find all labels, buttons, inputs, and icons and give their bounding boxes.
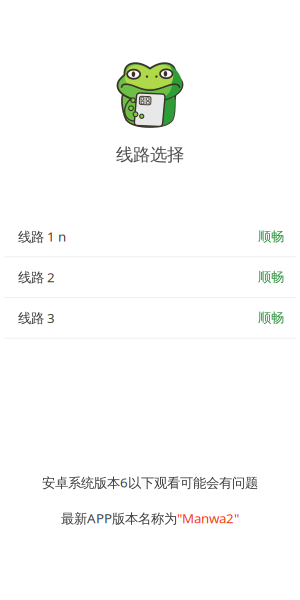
button[interactable]: 线路 2 xyxy=(0,257,300,298)
staticText: 线路 1 n xyxy=(18,228,66,245)
staticText: 顺畅 xyxy=(258,269,284,285)
staticText: "Manwa2" xyxy=(177,509,239,527)
button[interactable]: 线路 1 n xyxy=(0,217,300,257)
staticText: 线路 2 xyxy=(18,268,55,286)
staticText: 线路选择 xyxy=(116,144,184,165)
staticText: 安卓系统版本6以下观看可能会有问题 xyxy=(42,474,258,491)
staticText: 线路 3 xyxy=(18,309,55,327)
button[interactable]: 线路 3 xyxy=(0,298,300,339)
staticText: 顺畅 xyxy=(258,310,284,326)
staticText: 最新APP版本名称为 xyxy=(61,509,177,527)
staticText: 顺畅 xyxy=(258,228,284,245)
